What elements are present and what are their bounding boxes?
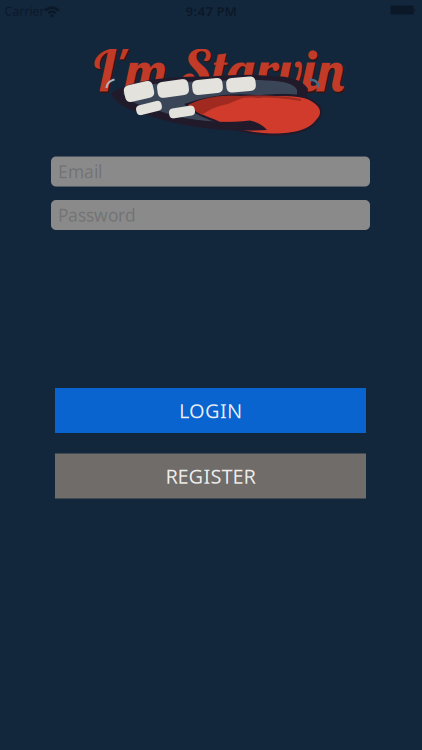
staticText: REGISTER — [165, 463, 255, 489]
staticText: Password — [58, 203, 136, 226]
staticText: Carrier — [4, 3, 44, 19]
staticText: I'm Starvin — [91, 34, 347, 106]
staticText: LOGIN — [179, 397, 242, 424]
staticText: 9:47 PM — [185, 2, 236, 20]
staticText: Email — [58, 160, 102, 183]
button[interactable]: Password — [51, 200, 370, 230]
button[interactable]: Email — [51, 156, 370, 186]
staticText: I'm Starvin — [92, 36, 348, 107]
button[interactable]: LOGIN — [55, 388, 366, 433]
button[interactable]: REGISTER — [55, 453, 366, 498]
